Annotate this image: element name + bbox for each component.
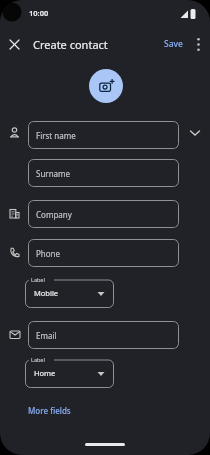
button[interactable]	[191, 35, 205, 53]
staticText: Save	[164, 38, 183, 50]
staticText: Email	[36, 330, 57, 341]
button[interactable]: More fields	[28, 405, 71, 416]
button[interactable]: Company	[28, 200, 179, 228]
staticText: Label	[31, 276, 45, 283]
button[interactable]: Email	[28, 321, 179, 349]
staticText: Home	[34, 368, 56, 378]
staticText: Label	[31, 356, 45, 363]
staticText: Surname	[36, 168, 71, 179]
button[interactable]: First name	[28, 121, 179, 149]
button[interactable]: Label	[25, 357, 114, 388]
button[interactable]: Phone	[28, 239, 179, 267]
staticText: Phone	[36, 248, 61, 259]
button[interactable]	[5, 35, 24, 54]
button[interactable]: Surname	[28, 159, 179, 187]
staticText: Mobile	[34, 288, 59, 298]
staticText: 10:00	[29, 8, 49, 18]
button[interactable]	[89, 69, 123, 103]
staticText: First name	[36, 130, 76, 141]
staticText: More fields	[28, 405, 71, 416]
button[interactable]: Label	[25, 277, 114, 308]
staticText: Create contact	[33, 37, 108, 52]
button[interactable]: Save	[164, 38, 183, 50]
button[interactable]	[189, 129, 201, 137]
staticText: Company	[36, 209, 72, 220]
